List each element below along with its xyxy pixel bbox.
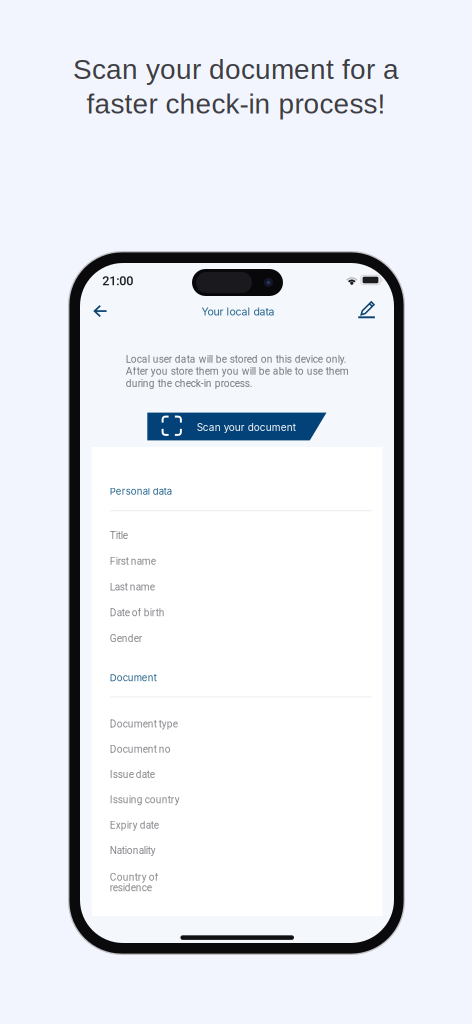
- button[interactable]: First name: [110, 555, 372, 567]
- staticText: Issuing country: [110, 794, 180, 806]
- button[interactable]: Issue date: [110, 769, 372, 781]
- staticText: Issue date: [110, 769, 155, 780]
- staticText: Title: [110, 530, 128, 541]
- button[interactable]: Country of: [110, 871, 372, 893]
- button[interactable]: Nationality: [110, 844, 372, 856]
- button[interactable]: Date of birth: [110, 607, 372, 619]
- staticText: Document type: [110, 718, 178, 730]
- staticText: Your local data: [201, 305, 274, 318]
- staticText: Document: [110, 672, 157, 683]
- button[interactable]: Back: [87, 296, 119, 326]
- button[interactable]: Expiry date: [110, 819, 372, 831]
- staticText: Local user data will be stored on this d…: [126, 353, 349, 389]
- button[interactable]: Issuing country: [110, 794, 372, 806]
- button[interactable]: Edit: [352, 296, 384, 326]
- staticText: Expiry date: [110, 819, 159, 831]
- button[interactable]: Document type: [110, 718, 372, 730]
- button[interactable]: Title: [110, 530, 372, 542]
- staticText: faster check-in process!: [86, 88, 385, 119]
- button[interactable]: Document no: [110, 743, 372, 755]
- staticText: Document no: [110, 743, 171, 755]
- staticText: residence: [110, 882, 152, 894]
- staticText: Scan your document for a: [73, 54, 399, 85]
- staticText: Personal data: [110, 485, 172, 497]
- button[interactable]: Last name: [110, 581, 372, 593]
- staticText: Date of birth: [110, 607, 165, 619]
- staticText: Country of: [110, 871, 159, 883]
- button[interactable]: Gender: [110, 633, 372, 645]
- button[interactable]: Scan your document: [147, 413, 326, 440]
- staticText: First name: [110, 555, 156, 567]
- staticText: 21:00: [102, 273, 133, 288]
- staticText: Scan your document: [197, 421, 296, 433]
- staticText: Last name: [110, 581, 155, 593]
- staticText: Nationality: [110, 845, 156, 856]
- staticText: Gender: [110, 633, 142, 644]
